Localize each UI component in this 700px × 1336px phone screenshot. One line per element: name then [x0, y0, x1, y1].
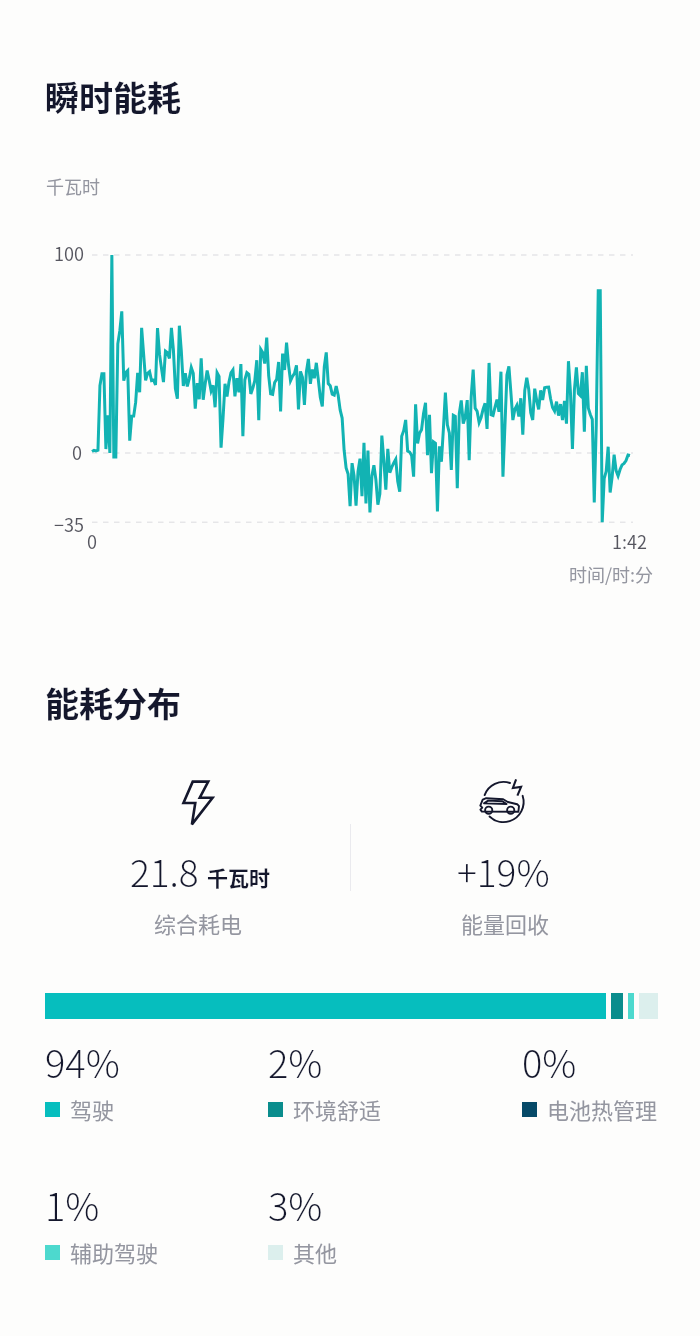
staticText: 能耗分布	[45, 678, 181, 727]
staticText: +19%	[457, 844, 550, 898]
staticText: 3%	[268, 1177, 323, 1232]
staticText: 21.8	[130, 844, 199, 898]
button[interactable]: 0%	[522, 1034, 658, 1125]
staticText: 100	[54, 240, 84, 266]
button[interactable]: 94%	[45, 1034, 120, 1125]
staticText: 辅助驾驶	[70, 1236, 159, 1268]
staticText: 时间/时:分	[0, 561, 653, 587]
button[interactable]: 3%	[268, 1177, 338, 1268]
button[interactable]: 2%	[268, 1034, 382, 1125]
staticText: 0%	[522, 1034, 577, 1089]
staticText: 综合耗电	[154, 907, 243, 939]
staticText: 0	[87, 528, 97, 554]
staticText: 电池热管理	[547, 1093, 658, 1125]
staticText: 94%	[45, 1034, 120, 1089]
staticText: 2%	[268, 1034, 323, 1089]
other: Energy recovered	[479, 778, 525, 824]
staticText: 千瓦时	[207, 862, 270, 892]
staticText: 瞬时能耗	[45, 72, 181, 121]
staticText: 千瓦时	[46, 173, 100, 199]
staticText: 驾驶	[70, 1093, 115, 1125]
other: Energy consumed	[182, 780, 214, 826]
staticText: 环境舒适	[293, 1093, 382, 1125]
staticText: 能量回收	[461, 907, 550, 939]
staticText: 其他	[293, 1236, 338, 1268]
staticText: 1:42	[612, 528, 647, 554]
button[interactable]	[45, 993, 658, 1019]
button[interactable]: 1%	[45, 1177, 159, 1268]
staticText: 1%	[45, 1177, 100, 1232]
button[interactable]: Energy recovered	[479, 778, 525, 824]
staticText: 0	[72, 439, 82, 465]
staticText: −35	[54, 511, 84, 537]
button[interactable]: Energy consumed	[182, 780, 214, 826]
